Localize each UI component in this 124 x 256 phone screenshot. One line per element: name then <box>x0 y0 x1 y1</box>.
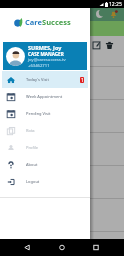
staticText: 12:25 <box>109 1 122 8</box>
staticText: Week Appointment <box>26 94 63 99</box>
button[interactable]: Profile <box>2 139 88 156</box>
staticText: CASE MANAGER <box>28 51 64 57</box>
button[interactable]: Rota <box>2 122 88 139</box>
staticText: Rota <box>26 128 35 133</box>
staticText: joy@caresuccess.tv <box>28 57 66 63</box>
staticText: Pending Visit <box>26 111 51 116</box>
staticText: SURMES, Joy <box>28 44 62 51</box>
staticText: Success <box>42 17 71 27</box>
staticText: Today's Visit <box>26 77 49 82</box>
button[interactable]: Logout <box>2 173 88 190</box>
button[interactable]: Pending Visit <box>2 105 88 122</box>
staticText: +63462711 <box>28 63 50 69</box>
staticText: About <box>26 162 38 167</box>
staticText: Profile <box>26 145 39 150</box>
staticText: 1 <box>81 77 84 83</box>
other: Notifications <box>109 10 118 19</box>
button[interactable]: Today's Visit <box>2 71 88 88</box>
staticText: Care <box>25 17 42 27</box>
other: Night mode <box>96 10 104 18</box>
button[interactable]: About <box>2 156 88 173</box>
staticText: Logout <box>26 179 40 184</box>
button[interactable]: Week Appointment <box>2 88 88 105</box>
